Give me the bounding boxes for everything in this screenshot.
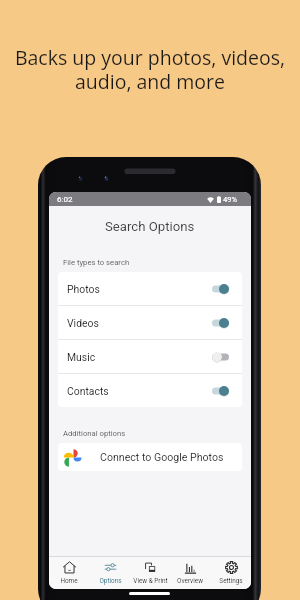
staticText: Search Options — [105, 219, 195, 234]
staticText: Contacts — [67, 385, 109, 397]
staticText: Home — [60, 577, 78, 585]
staticText: View & Print — [133, 577, 168, 585]
staticText: Options — [99, 577, 122, 585]
staticText: 49% — [223, 195, 238, 204]
staticText: Photos — [67, 283, 100, 295]
button[interactable]: Videos — [58, 306, 242, 339]
button[interactable]: Connect to Google Photos — [58, 443, 242, 471]
button[interactable]: Contacts — [58, 374, 242, 407]
staticText: Videos — [67, 317, 99, 329]
staticText: Backs up your photos, videos, audio, and… — [10, 44, 290, 95]
button[interactable]: Photos — [58, 272, 242, 305]
staticText: Overview — [177, 577, 203, 585]
button[interactable]: Music — [58, 340, 242, 373]
staticText: Settings — [219, 577, 243, 585]
staticText: File types to search — [63, 258, 130, 267]
staticText: Music — [67, 351, 96, 363]
button[interactable]: Options — [90, 557, 130, 589]
staticText: Additional options — [63, 429, 126, 438]
button[interactable]: Settings — [211, 557, 251, 589]
button[interactable]: Overview — [170, 557, 210, 589]
button[interactable]: View & Print — [130, 557, 170, 589]
button[interactable]: Home — [49, 557, 89, 589]
staticText: 6:02 — [57, 195, 73, 204]
staticText: Connect to Google Photos — [100, 451, 224, 463]
